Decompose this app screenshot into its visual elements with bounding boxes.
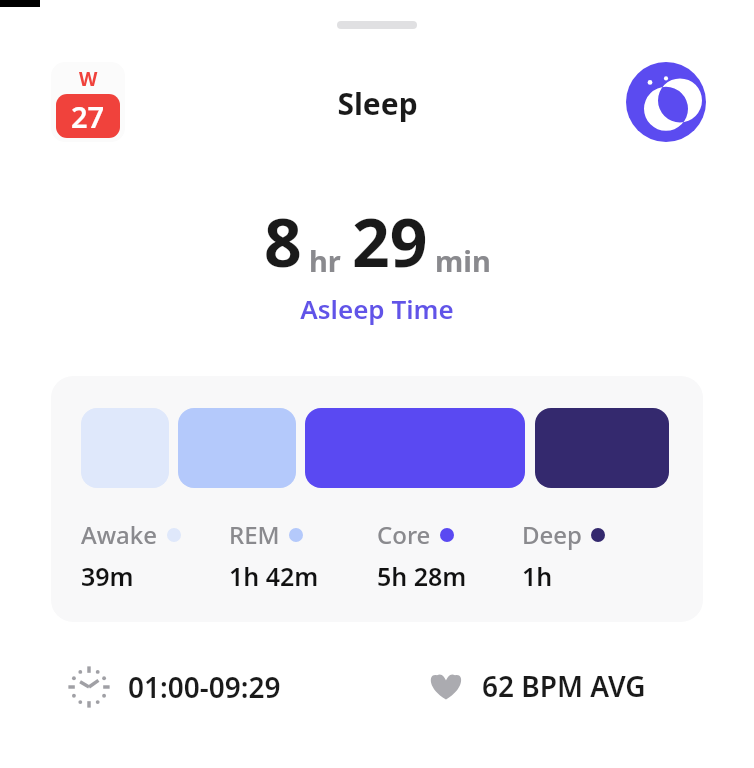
staticText: hr xyxy=(309,241,341,280)
staticText: Asleep Time xyxy=(300,291,454,326)
staticText: Core xyxy=(377,518,431,551)
staticText: 5h 28m xyxy=(377,559,467,593)
staticText: min xyxy=(435,241,491,280)
staticText: 1h 42m xyxy=(229,559,319,593)
staticText: 8 xyxy=(264,196,302,286)
button[interactable]: Sleep mode xyxy=(626,62,706,142)
button[interactable]: Wednesday 27, open calendar xyxy=(51,62,125,142)
button[interactable]: Awake xyxy=(51,376,703,622)
staticText: Sleep xyxy=(337,83,418,124)
staticText: 29 xyxy=(352,196,428,286)
staticText: 39m xyxy=(81,559,134,593)
staticText: 27 xyxy=(71,97,105,136)
staticText: Deep xyxy=(522,518,582,551)
button[interactable]: 01:00-09:29 xyxy=(66,664,281,710)
staticText: W xyxy=(79,66,98,92)
staticText: Awake xyxy=(81,518,158,551)
button[interactable]: 62 BPM AVG xyxy=(424,664,646,708)
staticText: REM xyxy=(229,518,280,551)
staticText: 62 BPM AVG xyxy=(482,667,646,705)
staticText: 01:00-09:29 xyxy=(128,668,281,706)
staticText: 1h xyxy=(522,559,553,593)
